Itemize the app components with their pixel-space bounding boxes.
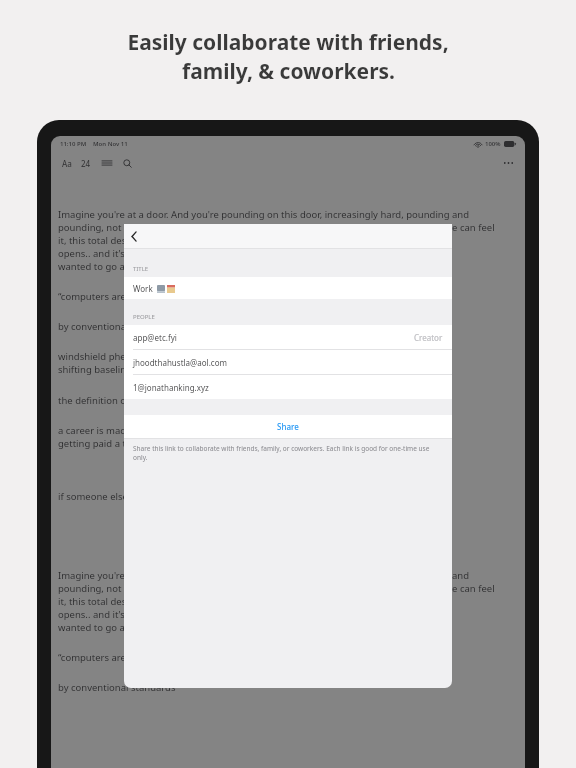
staticText: 100%: [485, 140, 501, 148]
staticText: app@etc.fyi: [133, 332, 177, 343]
button[interactable]: Back: [124, 227, 144, 246]
button[interactable]: app@etc.fyi: [124, 325, 452, 349]
staticText: it, this total desperation in the poundi…: [58, 595, 439, 608]
staticText: wanted to go all along.: [58, 621, 160, 634]
button[interactable]: Search: [121, 157, 134, 170]
staticText: family, & coworkers.: [182, 57, 395, 86]
button[interactable]: Work: [124, 277, 452, 299]
staticText: opens.. and it's open. And you realize, …: [58, 608, 408, 621]
staticText: pounding, not even knowing really why. A…: [58, 221, 495, 234]
button[interactable]: Menu: [100, 157, 114, 169]
staticText: opens.. and it's open. And you realize, …: [58, 247, 408, 260]
staticText: 24: [81, 158, 91, 169]
staticText: 1@jonathanking.xyz: [133, 382, 209, 393]
staticText: Mon Nov 11: [93, 140, 128, 148]
staticText: by conventional standards: [58, 681, 176, 694]
button[interactable]: More options: [501, 159, 516, 167]
staticText: it, this total desperation in the poundi…: [58, 234, 439, 247]
staticText: Share: [277, 421, 299, 432]
staticText: “computers aren't paintings”: [58, 651, 185, 664]
button[interactable]: Aa: [60, 156, 74, 171]
staticText: jhoodthahustla@aol.com: [133, 357, 227, 368]
staticText: PEOPLE: [133, 313, 155, 321]
staticText: Imagine you're at a door. And you're pou…: [58, 569, 470, 582]
button[interactable]: 1@jonathanking.xyz: [124, 375, 452, 399]
staticText: “computers aren't paintings”: [58, 290, 185, 303]
button[interactable]: Share: [124, 415, 452, 438]
staticText: pounding, not even knowing really why. A…: [58, 582, 495, 595]
staticText: by conventional standards: [58, 320, 176, 333]
staticText: Aa: [62, 158, 72, 169]
staticText: TITLE: [133, 265, 149, 273]
staticText: shifting baselines pace layering: [58, 363, 199, 376]
staticText: Creator: [414, 332, 443, 343]
staticText: wanted to go all along.: [58, 260, 160, 273]
staticText: 11:10 PM: [60, 140, 87, 148]
staticText: if someone else has the same idea as you…: [58, 490, 322, 503]
button[interactable]: 24: [79, 156, 93, 171]
staticText: windshield phenomenon ladder of abstract…: [58, 350, 265, 363]
staticText: Share this link to collaborate with frie…: [133, 444, 443, 462]
staticText: the definition of ‘career’ was something…: [58, 394, 347, 407]
staticText: Easily collaborate with friends,: [127, 28, 449, 57]
staticText: a career is made up of all the things yo…: [58, 424, 343, 437]
staticText: getting paid a thing for it: [58, 437, 170, 450]
staticText: Work: [133, 283, 153, 294]
button[interactable]: jhoodthahustla@aol.com: [124, 350, 452, 374]
staticText: Imagine you're at a door. And you're pou…: [58, 208, 470, 221]
